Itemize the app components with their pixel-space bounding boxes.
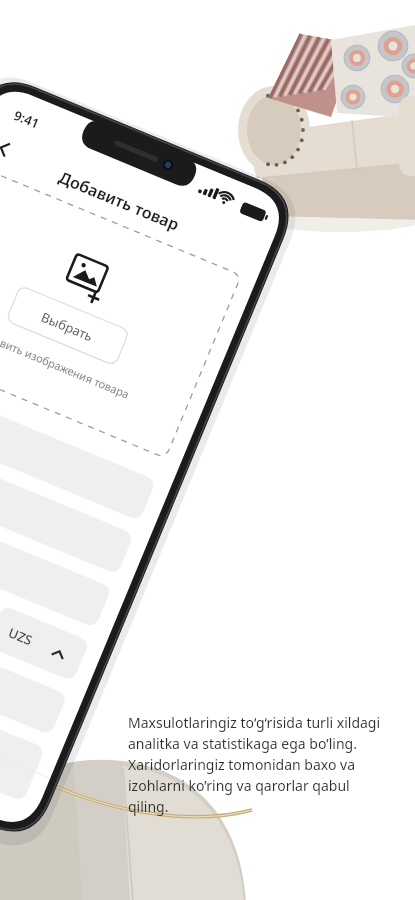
button[interactable]: Назад	[14, 106, 48, 136]
button[interactable]	[60, 258, 172, 300]
button[interactable]	[40, 578, 114, 624]
button[interactable]: Профиль	[4, 718, 70, 776]
